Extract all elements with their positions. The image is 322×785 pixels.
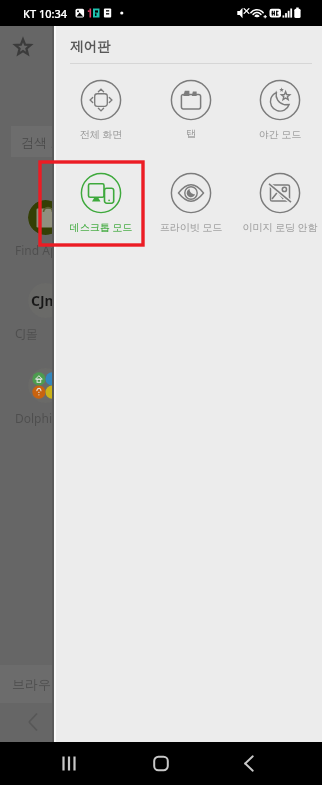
staticText: 프라이빗 모드	[146, 220, 236, 234]
button[interactable]	[28, 283, 63, 318]
staticText: CJmall	[31, 291, 76, 310]
staticText: 제어판	[70, 38, 111, 55]
button[interactable]: 데스크톱 모드	[56, 165, 146, 235]
button[interactable]: Bookmarks	[7, 31, 39, 63]
button[interactable]: Recents	[49, 742, 89, 785]
button[interactable]: 전체 화면	[56, 72, 146, 142]
staticText: Dolphin	[15, 410, 75, 426]
staticText: 검색 또는 URL 입력	[21, 133, 134, 151]
button[interactable]: 이미지 로딩 안함	[235, 165, 322, 235]
button[interactable]: Back	[21, 710, 45, 734]
button[interactable]: Home	[141, 742, 181, 785]
button[interactable]	[28, 200, 63, 235]
button[interactable]: 야간 모드	[235, 72, 322, 142]
button[interactable]: 탭	[146, 72, 236, 141]
button[interactable]: 제어판	[56, 26, 322, 64]
button[interactable]: Back	[229, 742, 269, 785]
staticText: 탭	[146, 127, 236, 140]
staticText: KT 10:34	[23, 6, 68, 21]
button[interactable]	[28, 368, 63, 403]
staticText: 데스크톱 모드	[56, 220, 146, 234]
staticText: 이미지 로딩 안함	[235, 220, 322, 234]
staticText: 야간 모드	[235, 127, 322, 141]
staticText: 브라우저 종료	[12, 675, 94, 693]
staticText: CJ몰	[15, 325, 75, 341]
button[interactable]: 프라이빗 모드	[146, 165, 236, 235]
staticText: Find App	[15, 242, 75, 258]
staticText: 전체 화면	[56, 127, 146, 141]
